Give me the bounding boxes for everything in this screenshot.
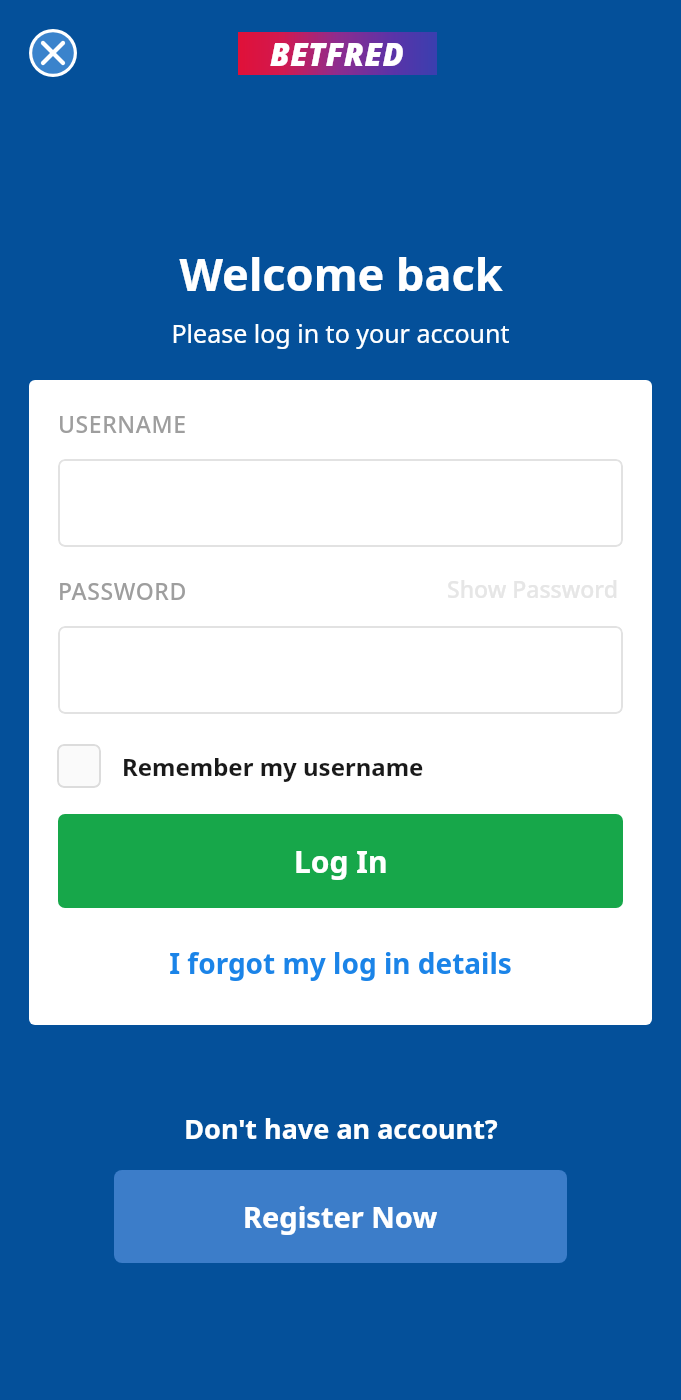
staticText: Welcome back bbox=[179, 243, 503, 304]
button[interactable] bbox=[58, 626, 623, 714]
staticText: BETFRED bbox=[270, 33, 405, 75]
staticText: Remember my username bbox=[122, 750, 424, 783]
button[interactable] bbox=[58, 459, 623, 547]
staticText: USERNAME bbox=[58, 408, 187, 439]
button[interactable]: Close bbox=[28, 28, 78, 78]
staticText: Register Now bbox=[243, 1197, 438, 1236]
staticText: I forgot my log in details bbox=[169, 944, 512, 982]
button[interactable]: Remember my username bbox=[57, 740, 424, 792]
button[interactable]: Show Password bbox=[447, 570, 618, 606]
staticText: Log In bbox=[294, 841, 388, 882]
staticText: PASSWORD bbox=[58, 575, 187, 606]
button[interactable]: I forgot my log in details bbox=[29, 940, 652, 986]
button[interactable]: Register Now bbox=[114, 1170, 567, 1263]
staticText: Please log in to your account bbox=[171, 316, 510, 350]
button[interactable]: Log In bbox=[58, 814, 623, 908]
staticText: Don't have an account? bbox=[184, 1110, 498, 1147]
staticText: Show Password bbox=[447, 573, 618, 604]
